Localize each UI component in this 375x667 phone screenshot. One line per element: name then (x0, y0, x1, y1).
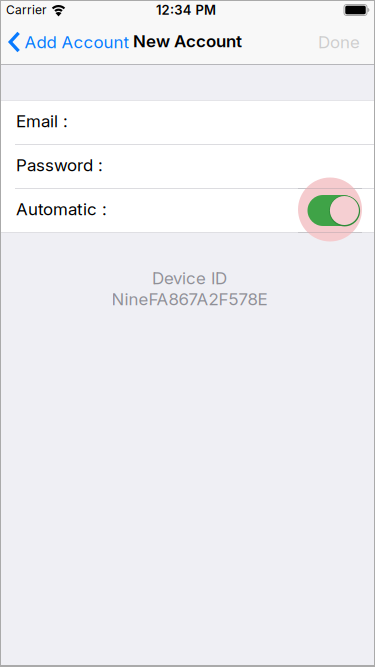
button[interactable]: Automatic (307, 195, 358, 226)
button[interactable]: Add Account (7, 31, 129, 53)
staticText: Password : (16, 155, 103, 175)
button[interactable]: Email : (0, 101, 375, 144)
button[interactable]: Automatic : (0, 189, 375, 232)
staticText: Device ID (152, 268, 227, 288)
button[interactable]: Password : (0, 145, 375, 188)
staticText: Done (318, 32, 360, 52)
staticText: New Account (133, 31, 242, 51)
staticText: Add Account (24, 32, 129, 52)
button[interactable]: Done (318, 32, 360, 52)
staticText: Carrier (6, 3, 47, 17)
staticText: 12:34 PM (156, 2, 216, 18)
staticText: NineFA867A2F578E (111, 289, 267, 309)
staticText: Automatic : (16, 199, 107, 219)
staticText: Email : (16, 111, 68, 131)
